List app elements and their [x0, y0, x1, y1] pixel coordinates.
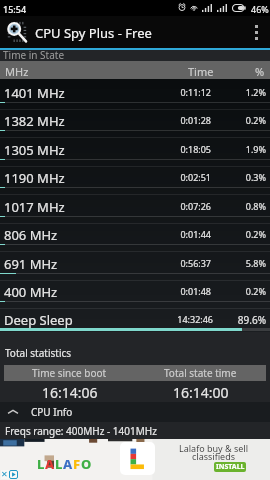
button[interactable]: More options: [242, 16, 270, 48]
staticText: 1190 MHz: [4, 169, 65, 187]
staticText: 46%: [251, 3, 269, 15]
staticText: CPU Spy Plus - Free: [35, 24, 152, 42]
staticText: 0:01:28: [0, 114, 211, 126]
staticText: 1382 MHz: [4, 112, 65, 130]
staticText: 806 MHz: [4, 226, 58, 244]
staticText: INSTALL: [216, 462, 245, 472]
button[interactable]: 806 MHz: [0, 223, 270, 252]
staticText: ✕: [1, 470, 8, 479]
staticText: Lalafo buy & sell: [157, 442, 270, 454]
button[interactable]: 1017 MHz: [0, 195, 270, 224]
staticText: 15:54: [3, 3, 27, 15]
staticText: Total statistics: [5, 346, 72, 360]
staticText: 0.3%: [0, 171, 266, 183]
staticText: 14:32:46: [0, 313, 213, 325]
button[interactable]: 400 MHz: [0, 280, 270, 309]
staticText: Time in State: [3, 48, 65, 59]
staticText: 1.2%: [0, 86, 266, 98]
staticText: Total state time: [164, 366, 237, 380]
staticText: 89.6%: [0, 313, 266, 327]
staticText: 16:14:06: [42, 383, 98, 399]
staticText: O: [81, 455, 92, 473]
staticText: 0.8%: [0, 200, 266, 212]
staticText: 0:11:12: [0, 86, 211, 98]
button[interactable]: Deep Sleep: [0, 308, 270, 331]
button[interactable]: CPU Info: [0, 402, 270, 422]
staticText: A: [63, 455, 73, 473]
staticText: A: [45, 455, 55, 473]
button[interactable]: 1382 MHz: [0, 109, 270, 138]
staticText: L: [55, 455, 63, 473]
staticText: Deep Sleep: [4, 311, 73, 329]
staticText: classifieds: [157, 450, 270, 462]
staticText: %: [255, 64, 265, 79]
button[interactable]: 1401 MHz: [0, 81, 270, 110]
staticText: Time since boot: [32, 366, 107, 380]
staticText: 400 MHz: [4, 283, 58, 301]
staticText: 0.2%: [0, 228, 266, 240]
button[interactable]: 1305 MHz: [0, 138, 270, 167]
button[interactable]: 691 MHz: [0, 252, 270, 281]
staticText: 5.8%: [0, 257, 266, 269]
button[interactable]: 1190 MHz: [0, 166, 270, 195]
staticText: CPU Info: [31, 405, 73, 419]
button[interactable]: ✕: [0, 439, 270, 480]
staticText: 16:14:00: [173, 383, 229, 399]
staticText: 0.2%: [0, 114, 266, 126]
staticText: MHz: [5, 64, 29, 79]
staticText: 1401 MHz: [4, 84, 65, 102]
staticText: 0:01:44: [0, 228, 211, 240]
staticText: 691 MHz: [4, 255, 58, 273]
staticText: 0:07:26: [0, 200, 211, 212]
staticText: 1.9%: [0, 143, 266, 155]
staticText: 0:56:37: [0, 257, 211, 269]
staticText: 1017 MHz: [4, 198, 65, 216]
staticText: 1305 MHz: [4, 141, 65, 159]
staticText: L: [37, 455, 45, 473]
staticText: 0:18:05: [0, 143, 211, 155]
staticText: F: [73, 455, 81, 473]
staticText: 0:02:51: [0, 171, 211, 183]
staticText: 0:01:48: [0, 285, 211, 297]
staticText: Freqs range: 400MHz - 1401MHz: [5, 424, 157, 438]
staticText: 0.2%: [0, 285, 266, 297]
button[interactable]: INSTALL: [214, 462, 246, 472]
staticText: Time: [188, 64, 214, 79]
